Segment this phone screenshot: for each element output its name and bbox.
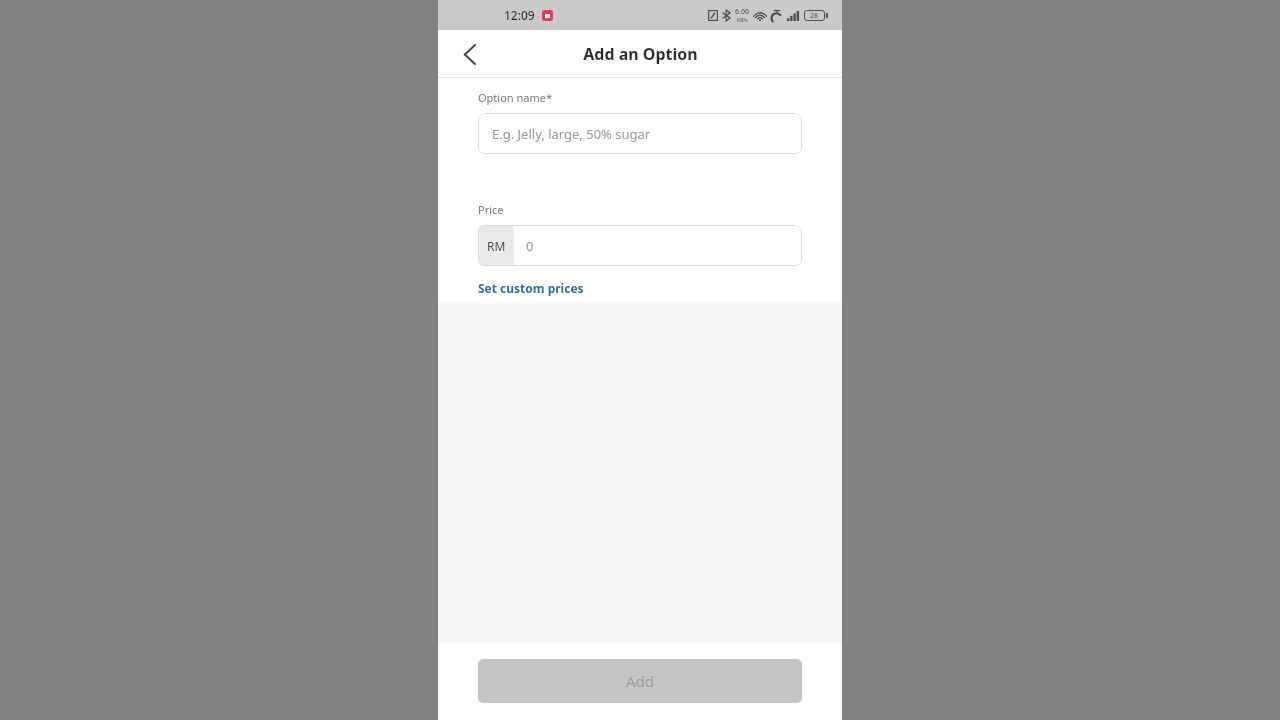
button[interactable]: RM <box>478 225 802 266</box>
staticText: KB/s <box>737 17 748 24</box>
staticText: 12:09 <box>504 7 535 23</box>
button[interactable]: Back <box>449 34 489 74</box>
button[interactable]: Set custom prices <box>478 280 584 296</box>
staticText: Set custom prices <box>478 280 584 296</box>
staticText: Add <box>626 671 655 691</box>
staticText: E.g. Jelly, large, 50% sugar <box>492 125 651 143</box>
button[interactable]: E.g. Jelly, large, 50% sugar <box>478 113 802 154</box>
staticText: RM <box>487 238 506 254</box>
staticText: Option name* <box>478 90 552 105</box>
staticText: Price <box>478 202 504 217</box>
button[interactable]: Add <box>478 659 802 703</box>
staticText: 28 <box>810 11 819 21</box>
staticText: Add an Option <box>583 43 698 65</box>
staticText: 0 <box>526 237 534 255</box>
staticText: 6.00 <box>735 7 749 17</box>
